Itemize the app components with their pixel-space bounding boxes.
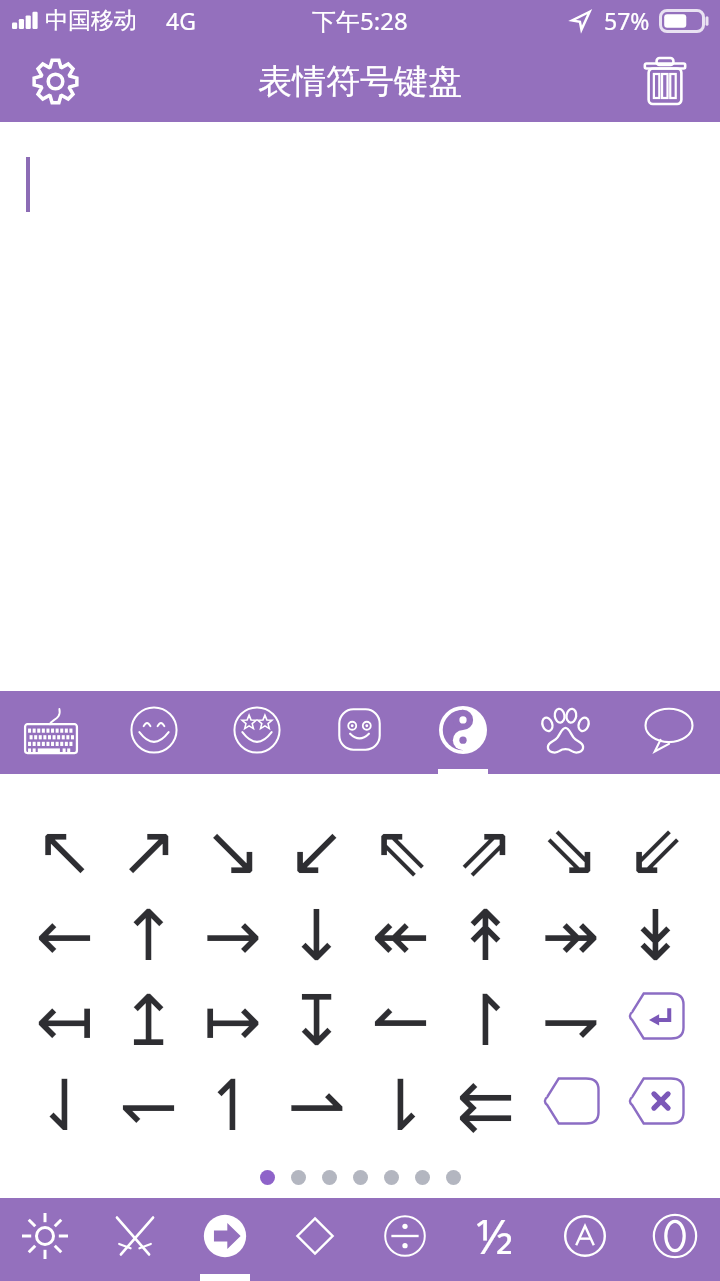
button[interactable]: ↠: [528, 893, 613, 978]
button[interactable]: Smileys: [102, 691, 205, 774]
staticText: ⇁: [541, 980, 600, 1061]
button[interactable]: ↼: [358, 978, 443, 1063]
staticText: ↙: [287, 810, 346, 891]
button[interactable]: ⇙: [613, 808, 698, 893]
staticText: ⇗: [456, 810, 515, 891]
staticText: →: [203, 895, 262, 976]
staticText: ½: [476, 1203, 514, 1268]
staticText: ⇘: [541, 810, 600, 891]
button[interactable]: ⇀: [274, 1063, 358, 1148]
button[interactable]: ↘: [190, 808, 274, 893]
button[interactable]: ↖: [22, 808, 106, 893]
button[interactable]: Letter A: [540, 1198, 630, 1281]
button[interactable]: Emotions: [205, 691, 308, 774]
button[interactable]: Keyboard: [0, 691, 102, 774]
button[interactable]: ↾: [443, 978, 528, 1063]
staticText: ⇂: [371, 1065, 430, 1146]
button[interactable]: ↿: [190, 1063, 274, 1148]
button[interactable]: Page 6: [415, 1170, 430, 1185]
staticText: ↖: [35, 810, 94, 891]
button[interactable]: ⇘: [528, 808, 613, 893]
button[interactable]: Symbols: [411, 691, 514, 774]
button[interactable]: Page 4: [353, 1170, 368, 1185]
staticText: ⇙: [626, 810, 685, 891]
button[interactable]: Fractions: [450, 1198, 540, 1281]
button[interactable]: Circled zero: [630, 1198, 720, 1281]
button[interactable]: Enter: [626, 992, 685, 1040]
staticText: 57%: [604, 5, 650, 36]
button[interactable]: Space: [528, 1063, 613, 1148]
button[interactable]: ↗: [106, 808, 190, 893]
staticText: ↗: [119, 810, 178, 891]
button[interactable]: Delete: [626, 1077, 685, 1125]
button[interactable]: ↧: [274, 978, 358, 1063]
button[interactable]: ↙: [274, 808, 358, 893]
staticText: ↿: [203, 1065, 262, 1146]
staticText: ↤: [35, 980, 94, 1061]
button[interactable]: Chat: [617, 691, 720, 774]
staticText: ↽: [119, 1065, 178, 1146]
button[interactable]: Delete: [613, 1063, 698, 1148]
button[interactable]: ⇃: [22, 1063, 106, 1148]
button[interactable]: Delete: [632, 48, 698, 114]
staticText: ⇖: [371, 810, 430, 891]
button[interactable]: ⇇: [443, 1063, 528, 1148]
staticText: 表情符号键盘: [258, 60, 462, 103]
button[interactable]: Divide: [360, 1198, 450, 1281]
button[interactable]: ↽: [106, 1063, 190, 1148]
staticText: 下午5:28: [312, 4, 408, 37]
button[interactable]: ↑: [106, 893, 190, 978]
staticText: 4G: [166, 5, 196, 36]
staticText: ⇃: [35, 1065, 94, 1146]
staticText: ⇇: [456, 1065, 515, 1146]
button[interactable]: ↦: [190, 978, 274, 1063]
button[interactable]: ⇁: [528, 978, 613, 1063]
button[interactable]: ↞: [358, 893, 443, 978]
button[interactable]: Page 7: [446, 1170, 461, 1185]
button[interactable]: ↟: [443, 893, 528, 978]
button[interactable]: Next: [180, 1198, 270, 1281]
staticText: ↓: [287, 895, 346, 976]
button[interactable]: ←: [22, 893, 106, 978]
button[interactable]: Page 3: [322, 1170, 337, 1185]
button[interactable]: Swords: [90, 1198, 180, 1281]
button[interactable]: →: [190, 893, 274, 978]
button[interactable]: ↓: [274, 893, 358, 978]
staticText: ↠: [541, 895, 600, 976]
button[interactable]: Animals: [514, 691, 617, 774]
button[interactable]: Page 1: [260, 1170, 275, 1185]
button[interactable]: ⇂: [358, 1063, 443, 1148]
button[interactable]: ↥: [106, 978, 190, 1063]
staticText: ↟: [456, 895, 515, 976]
staticText: ↘: [203, 810, 262, 891]
button[interactable]: ⇖: [358, 808, 443, 893]
staticText: 中国移动: [45, 6, 137, 35]
staticText: ↑: [119, 895, 178, 976]
button[interactable]: Faces: [308, 691, 411, 774]
button[interactable]: Enter: [613, 978, 698, 1063]
staticText: ↼: [371, 980, 430, 1061]
button[interactable]: Space: [541, 1077, 600, 1125]
staticText: ←: [35, 895, 94, 976]
button[interactable]: ⇗: [443, 808, 528, 893]
staticText: ↡: [626, 895, 685, 976]
button[interactable]: Page 5: [384, 1170, 399, 1185]
staticText: ↞: [371, 895, 430, 976]
button[interactable]: Settings: [22, 48, 88, 114]
button[interactable]: Brightness: [0, 1198, 90, 1281]
staticText: ↦: [203, 980, 262, 1061]
button[interactable]: ↤: [22, 978, 106, 1063]
button[interactable]: ↡: [613, 893, 698, 978]
staticText: ⇀: [287, 1065, 346, 1146]
staticText: ↧: [287, 980, 346, 1061]
staticText: ↥: [119, 980, 178, 1061]
staticText: ↾: [456, 980, 515, 1061]
button[interactable]: Page 2: [291, 1170, 306, 1185]
button[interactable]: Diamond: [270, 1198, 360, 1281]
